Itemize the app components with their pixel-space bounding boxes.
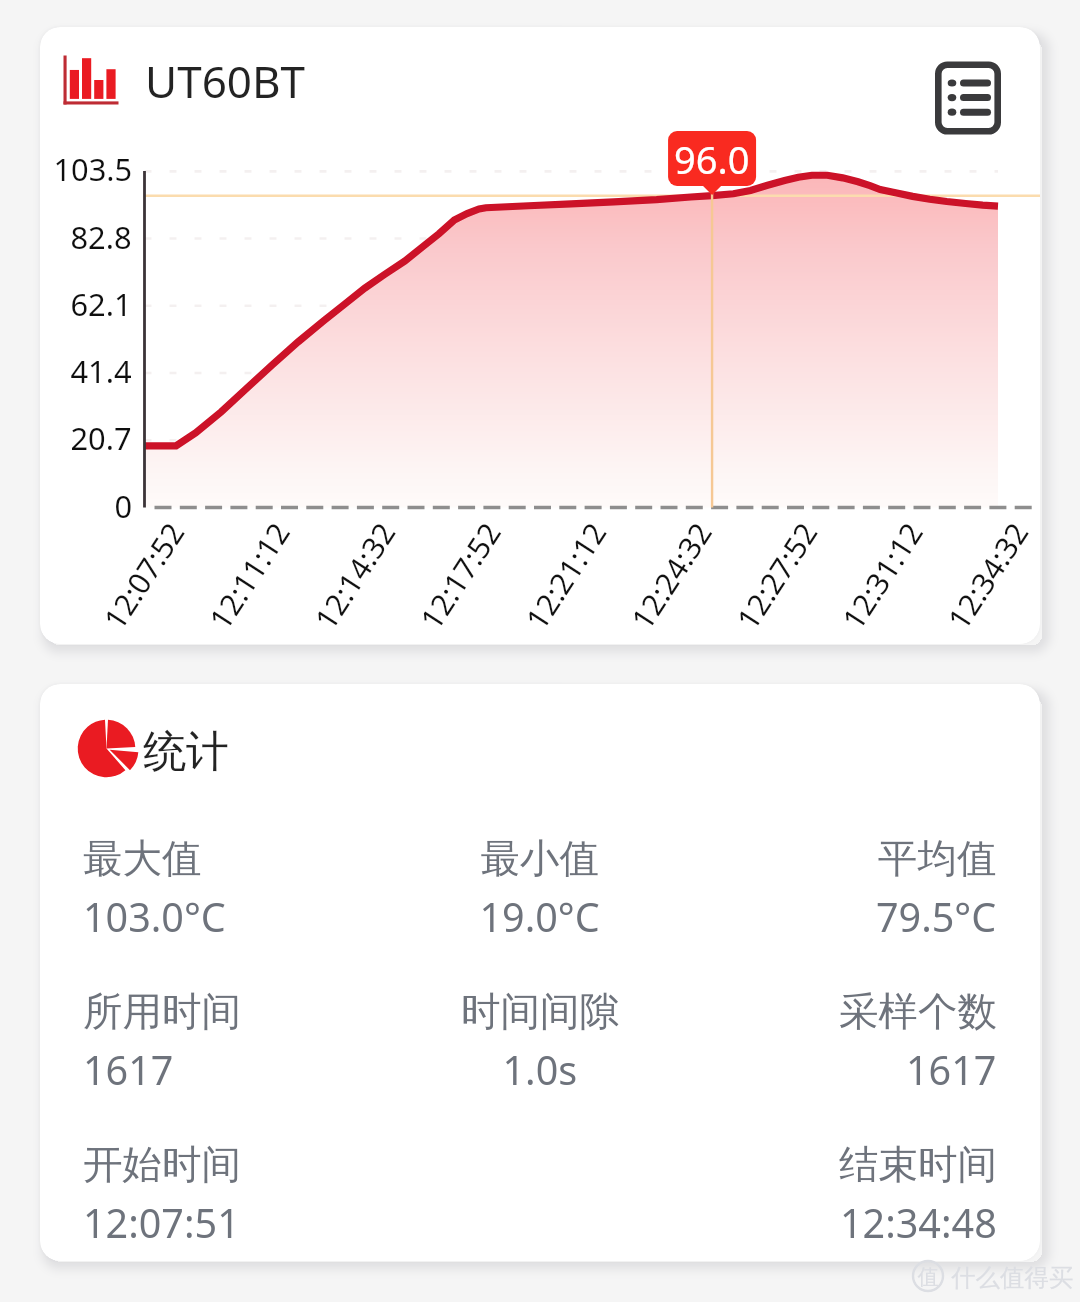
- button[interactable]: Data records list: [920, 48, 1004, 138]
- staticText: UT60BT: [146, 54, 307, 114]
- button[interactable]: UT60BT: [58, 51, 328, 117]
